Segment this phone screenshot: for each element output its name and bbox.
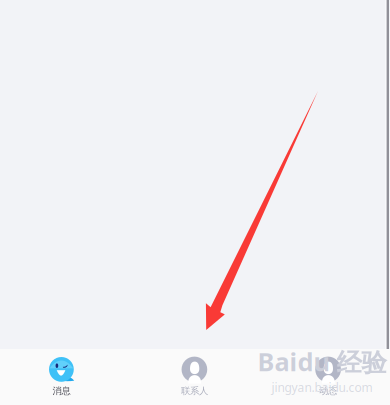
staticText: Baidu 经验	[257, 345, 386, 378]
staticText: 动态	[319, 385, 337, 397]
staticText: 消息	[53, 385, 71, 397]
staticText: 联系人	[181, 385, 208, 397]
button[interactable]: 动态	[273, 349, 383, 405]
staticText: jingyan.baidu.com	[271, 379, 372, 395]
button[interactable]: 消息	[7, 349, 117, 405]
button[interactable]: 联系人	[139, 349, 249, 405]
